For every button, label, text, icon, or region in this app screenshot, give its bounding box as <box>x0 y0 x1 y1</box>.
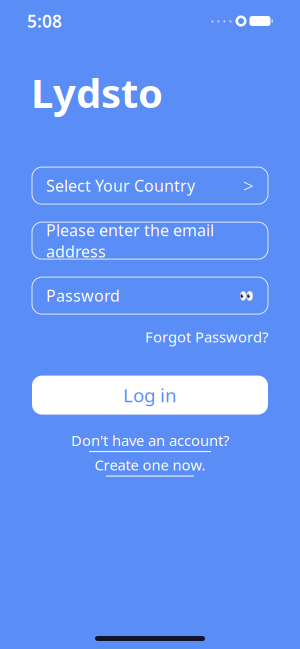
button[interactable]: Password <box>32 277 268 314</box>
button[interactable]: Select Your Country <box>32 167 268 204</box>
staticText: Log in <box>123 383 177 407</box>
button[interactable]: Forgot Password? <box>145 327 268 347</box>
button[interactable]: Please enter the email address <box>32 222 268 259</box>
staticText: Please enter the email address <box>46 219 214 262</box>
staticText: Don't have an account? <box>71 431 229 450</box>
staticText: • • • • <box>210 15 232 27</box>
staticText <box>232 14 235 28</box>
staticText: Select Your Country <box>46 175 195 196</box>
staticText: Create one now. <box>94 455 205 475</box>
staticText <box>246 14 249 28</box>
staticText: > <box>243 173 254 198</box>
button[interactable]: Log in <box>32 376 268 415</box>
button[interactable]: Don't have an account? <box>32 431 268 477</box>
staticText: Lydsto <box>31 66 163 119</box>
staticText: 5:08 <box>27 9 62 32</box>
staticText: Password <box>46 285 120 306</box>
staticText: Forgot Password? <box>145 327 268 347</box>
staticText: 👀 <box>239 289 254 302</box>
